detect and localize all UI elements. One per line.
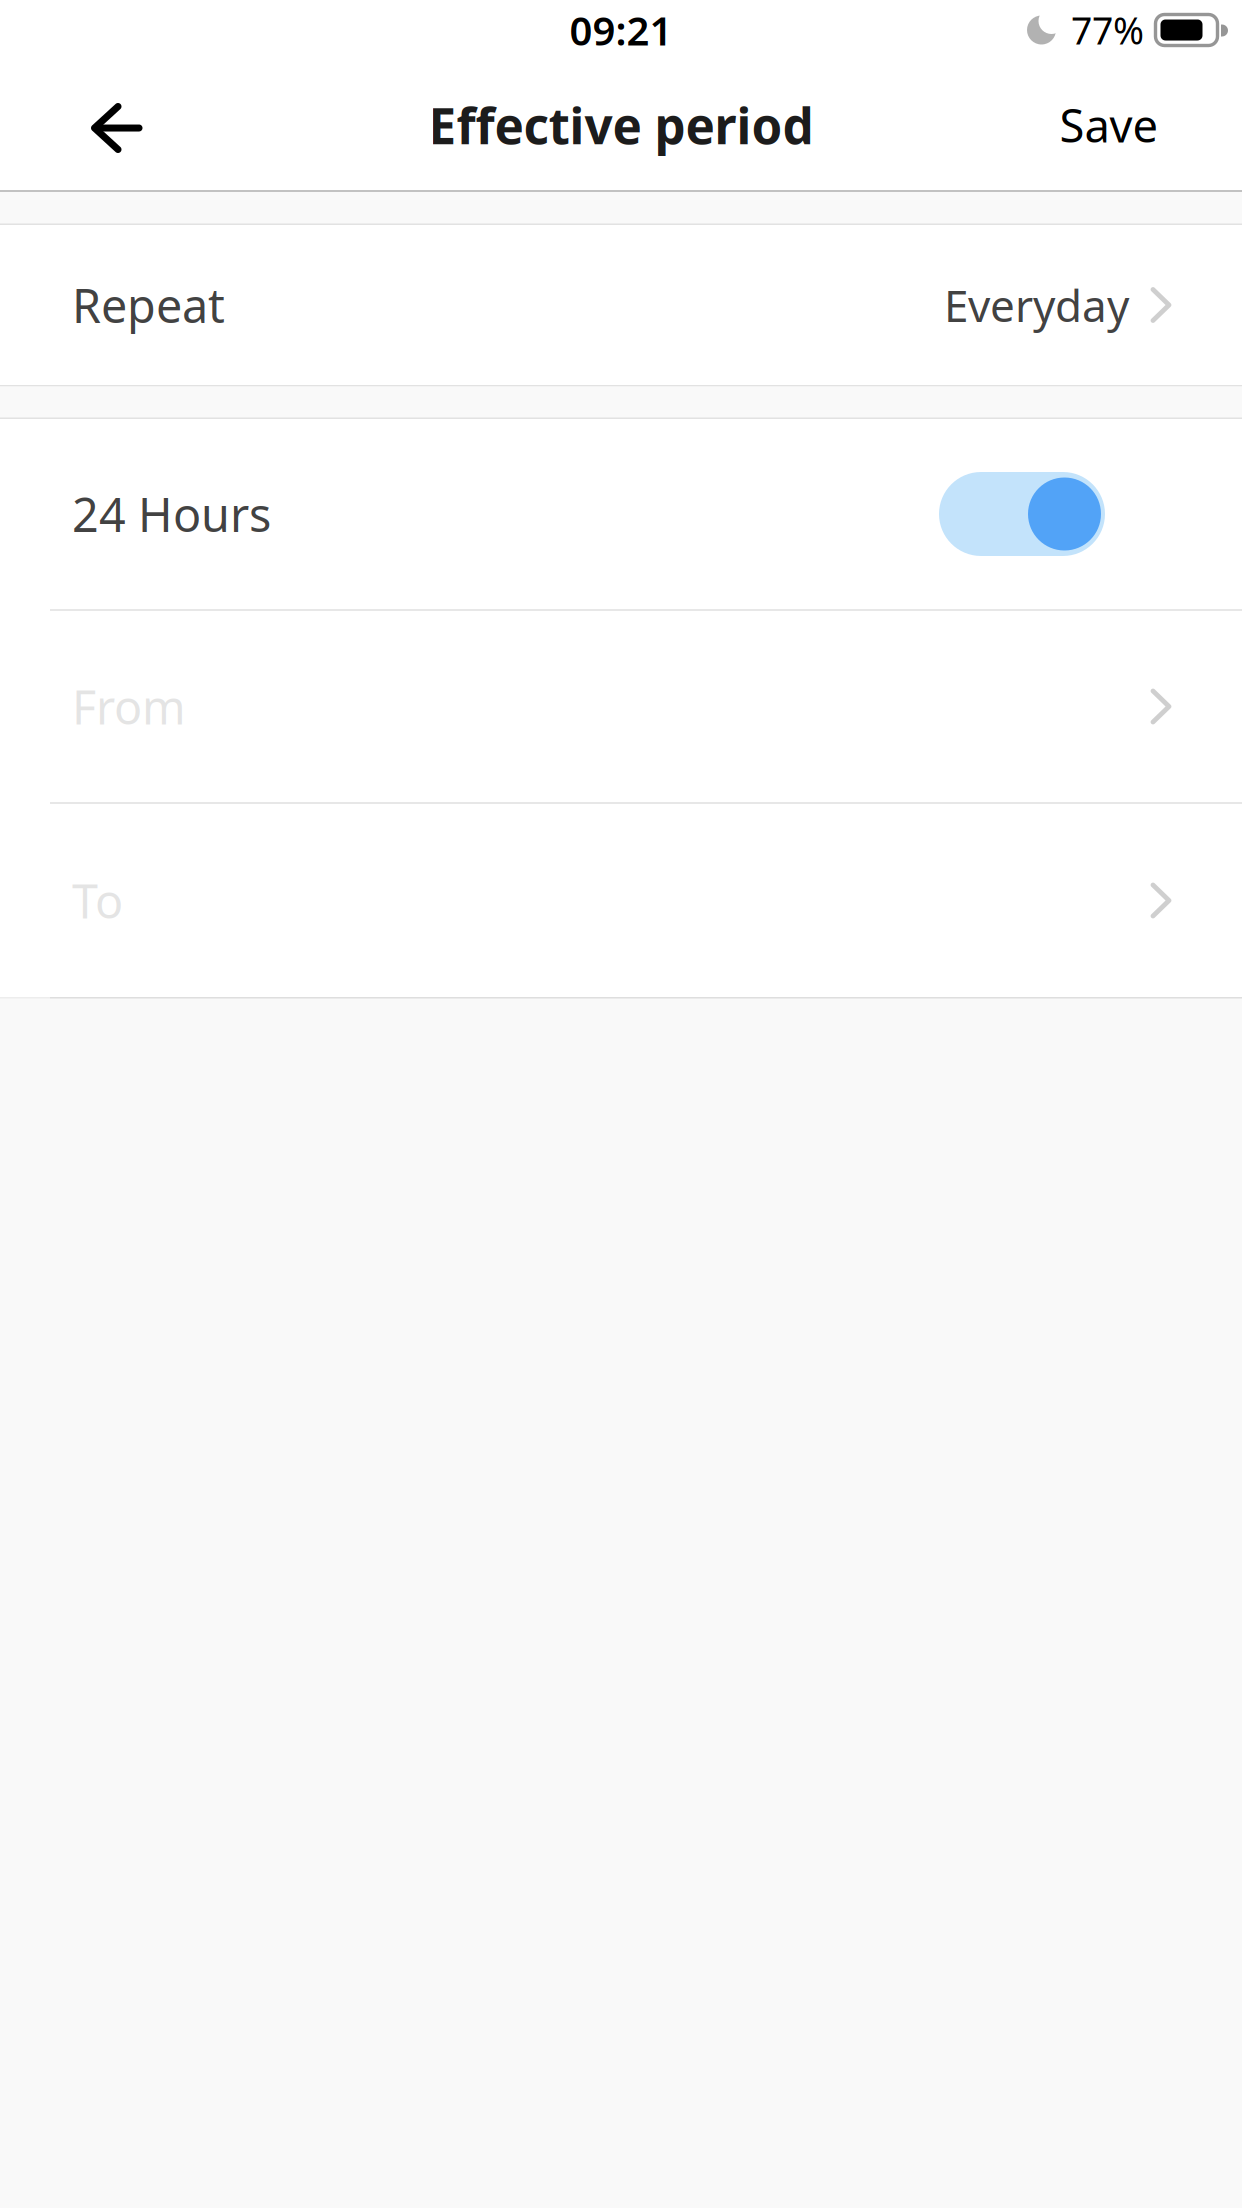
staticText: Effective period bbox=[428, 92, 813, 158]
staticText: Repeat bbox=[72, 274, 225, 336]
button[interactable]: 24 Hours bbox=[0, 419, 1242, 609]
staticText: 77% bbox=[1071, 5, 1144, 55]
staticText: To bbox=[72, 869, 123, 931]
staticText: Save bbox=[1059, 95, 1158, 155]
staticText: From bbox=[72, 675, 186, 737]
staticText: Everyday bbox=[944, 276, 1129, 334]
button[interactable]: 24 Hours switch bbox=[939, 472, 1105, 556]
staticText: 09:21 bbox=[569, 3, 672, 56]
staticText: 24 Hours bbox=[72, 483, 271, 545]
button[interactable]: Back bbox=[45, 60, 188, 190]
button[interactable]: Save bbox=[1054, 60, 1164, 190]
button[interactable]: Repeat bbox=[0, 225, 1242, 385]
